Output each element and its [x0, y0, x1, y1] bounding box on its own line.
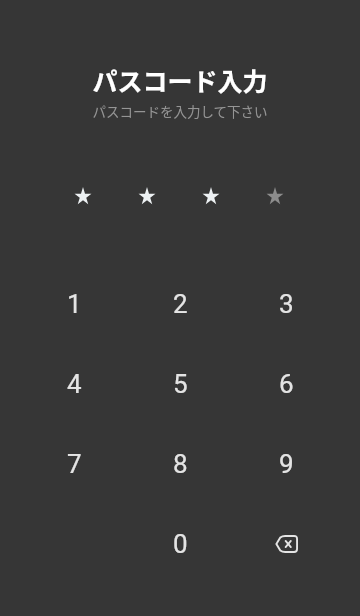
- button[interactable]: 6: [233, 344, 339, 424]
- button[interactable]: 8: [127, 424, 233, 504]
- button[interactable]: 4: [21, 344, 127, 424]
- staticText: 0: [173, 529, 188, 559]
- button[interactable]: 9: [233, 424, 339, 504]
- staticText: 5: [173, 369, 188, 399]
- button[interactable]: 0: [127, 504, 233, 584]
- button[interactable]: Backspace: [233, 504, 339, 584]
- button[interactable]: 2: [127, 264, 233, 344]
- staticText: 7: [67, 449, 82, 479]
- staticText: 8: [173, 449, 188, 479]
- staticText: パスコード入力: [0, 62, 360, 98]
- button[interactable]: 3: [233, 264, 339, 344]
- button[interactable]: 1: [21, 264, 127, 344]
- staticText: 1: [67, 289, 82, 319]
- staticText: 9: [279, 449, 294, 479]
- staticText: パスコードを入力して下さい: [0, 101, 360, 121]
- staticText: 3: [279, 289, 294, 319]
- button[interactable]: 5: [127, 344, 233, 424]
- staticText: 4: [67, 369, 82, 399]
- button[interactable]: 7: [21, 424, 127, 504]
- staticText: 6: [279, 369, 294, 399]
- staticText: 2: [173, 289, 188, 319]
